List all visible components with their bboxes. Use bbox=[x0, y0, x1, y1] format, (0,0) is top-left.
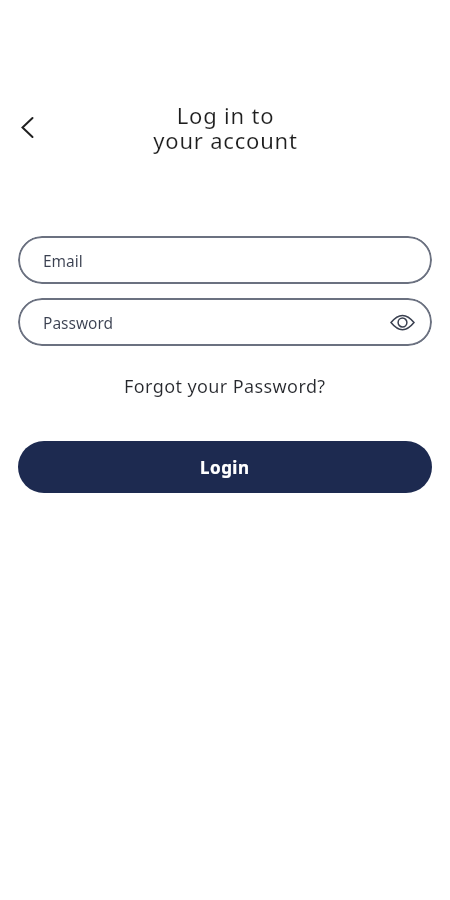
button[interactable]: Password bbox=[18, 298, 432, 346]
staticText: Email bbox=[43, 250, 83, 271]
button[interactable]: Forgot your Password? bbox=[124, 374, 326, 399]
button[interactable] bbox=[388, 308, 416, 336]
staticText: Login bbox=[200, 456, 250, 479]
button[interactable]: Email bbox=[18, 236, 432, 284]
staticText: Password bbox=[43, 312, 114, 333]
button[interactable]: Login bbox=[18, 441, 432, 493]
staticText: Log in to your account bbox=[153, 100, 298, 156]
button[interactable] bbox=[7, 107, 47, 147]
